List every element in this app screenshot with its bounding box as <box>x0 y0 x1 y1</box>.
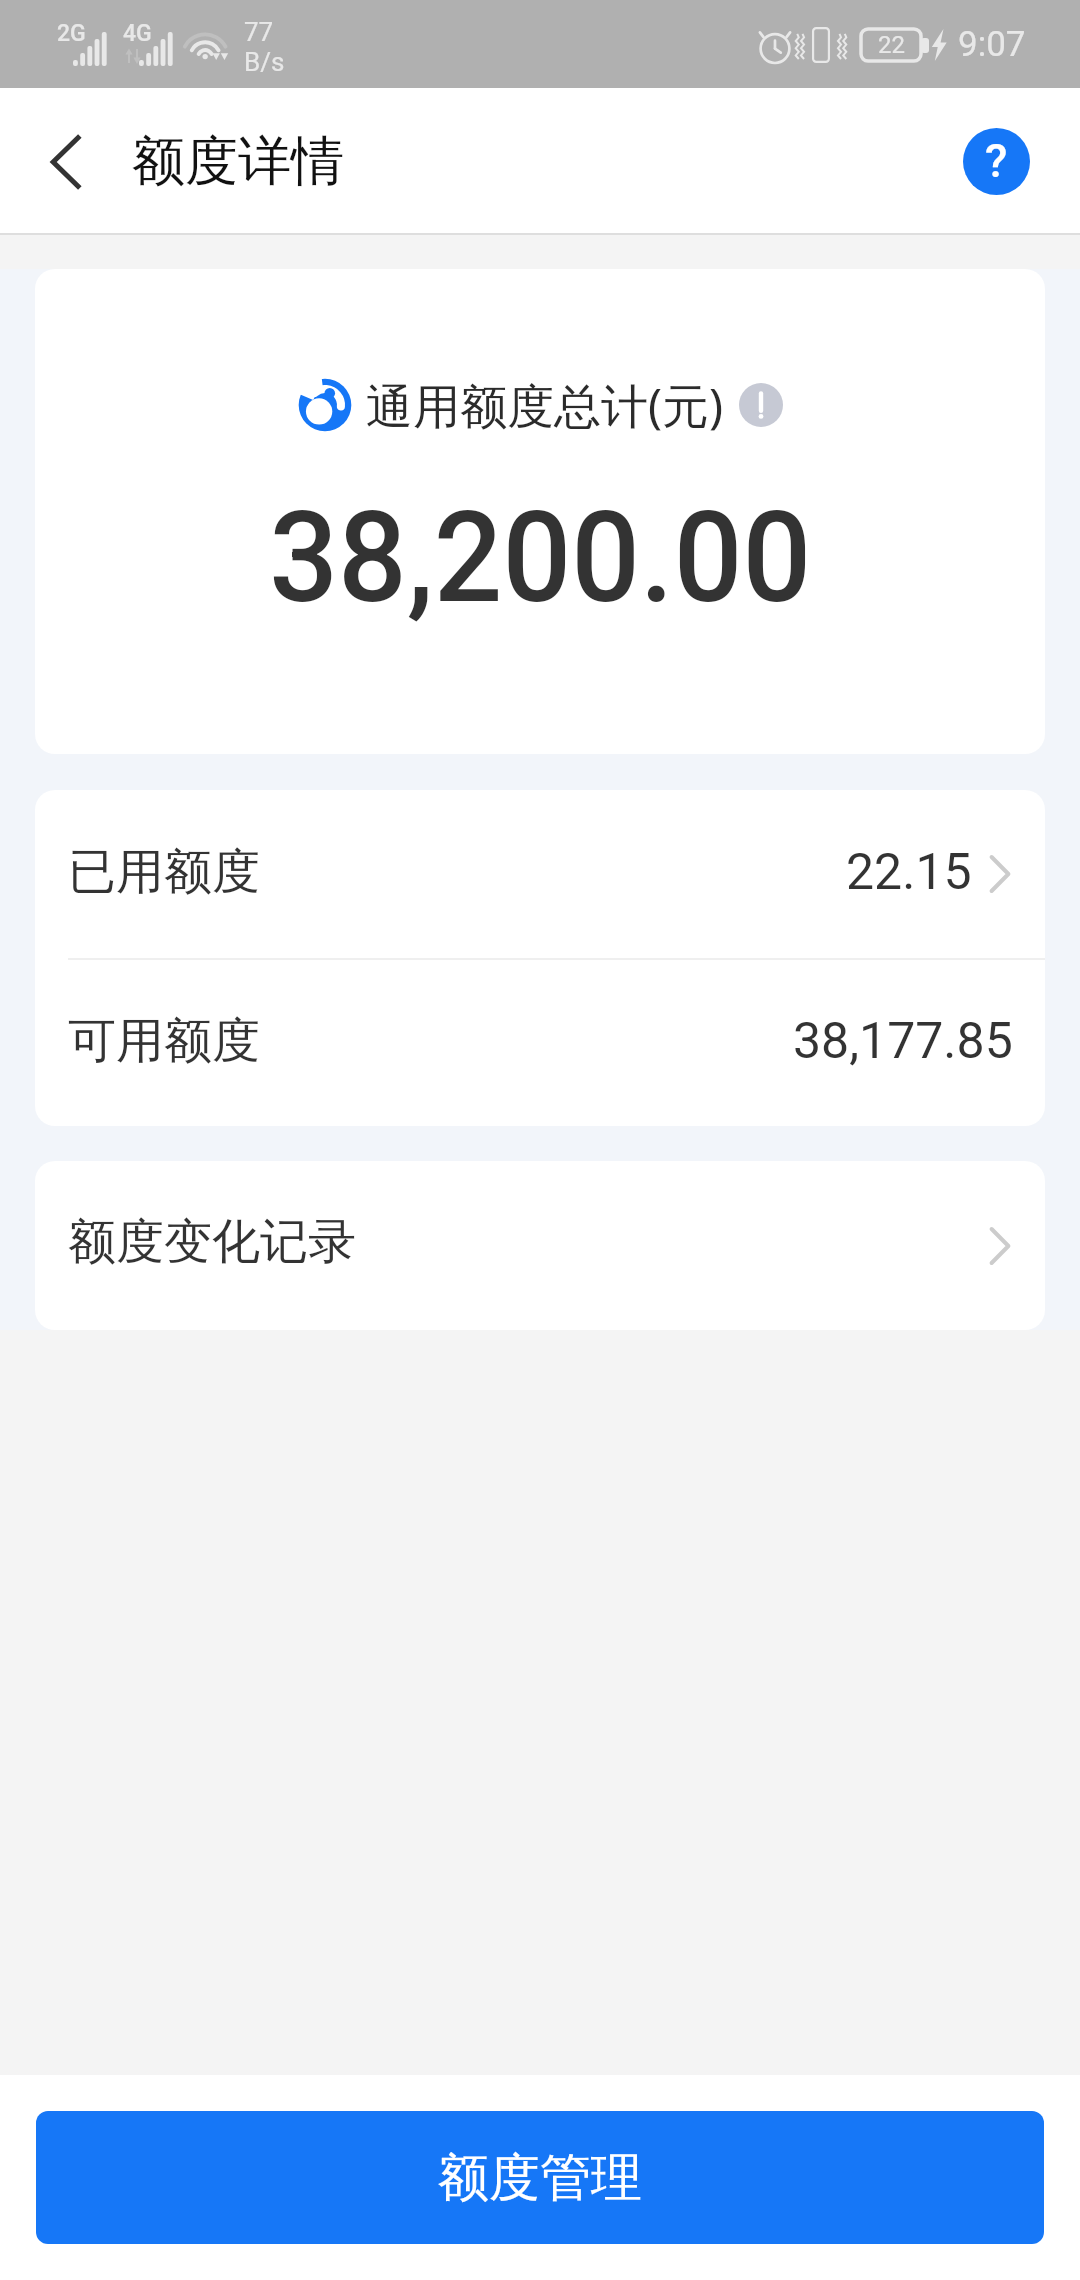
staticText: 可用额度 <box>68 1011 260 1071</box>
button[interactable]: 可用额度 <box>35 960 1045 1126</box>
staticText: 22 <box>878 31 905 59</box>
staticText: 额度详情 <box>132 128 344 195</box>
button[interactable]: Help <box>963 128 1030 195</box>
staticText: 4G <box>123 20 152 47</box>
staticText: 38,200.00 <box>269 484 812 632</box>
staticText: 38,177.85 <box>793 1012 1013 1071</box>
staticText: 2G <box>57 20 86 47</box>
staticText: 已用额度 <box>68 842 260 902</box>
staticText: ? <box>985 134 1008 188</box>
button[interactable]: 额度管理 <box>36 2111 1044 2244</box>
staticText: 9:07 <box>958 24 1026 65</box>
button[interactable]: Back <box>26 122 106 202</box>
staticText: 22.15 <box>846 843 972 902</box>
button[interactable]: 额度变化记录 <box>35 1161 1045 1330</box>
staticText: 77 <box>244 17 274 47</box>
staticText: 额度变化记录 <box>68 1212 356 1272</box>
staticText: B/s <box>244 47 285 77</box>
staticText: 额度管理 <box>438 2146 642 2210</box>
button[interactable]: 已用额度 <box>35 790 1045 958</box>
staticText: 通用额度总计(元) <box>366 373 724 437</box>
